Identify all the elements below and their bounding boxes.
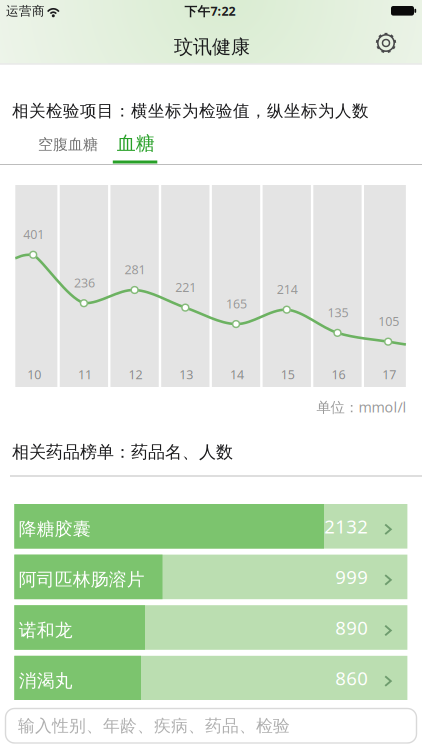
staticText: 236	[74, 274, 95, 291]
staticText: 相关药品榜单：药品名、人数	[12, 441, 233, 463]
staticText: 相关检验项目：横坐标为检验值，纵坐标为人数	[12, 101, 369, 121]
staticText: 玟讯健康	[174, 35, 250, 59]
staticText: 下午7:22	[184, 2, 235, 19]
staticText: 15	[281, 366, 295, 383]
staticText: 单位：mmol/l	[316, 397, 406, 417]
staticText: 阿司匹林肠溶片	[19, 568, 145, 591]
staticText: 17	[382, 366, 396, 383]
staticText: 221	[175, 279, 196, 296]
button[interactable]: Settings	[370, 27, 402, 59]
staticText: 运营商	[6, 3, 45, 19]
staticText: 860	[335, 665, 368, 691]
staticText: 12	[129, 366, 143, 383]
button[interactable]: 消渴丸	[14, 656, 407, 700]
staticText: 16	[331, 366, 345, 383]
staticText: 999	[335, 564, 368, 589]
staticText: 135	[327, 304, 348, 321]
staticText: 105	[378, 313, 399, 330]
staticText: 2132	[324, 514, 368, 539]
staticText: 14	[230, 366, 244, 383]
staticText: 401	[23, 226, 44, 243]
button[interactable]: 阿司匹林肠溶片	[14, 555, 407, 599]
staticText: 血糖	[117, 131, 155, 155]
staticText: 890	[335, 615, 368, 640]
button[interactable]: 诺和龙	[14, 605, 407, 650]
staticText: 11	[78, 366, 92, 383]
staticText: 10	[27, 366, 41, 383]
staticText: 输入性别、年龄、疾病、药品、检验	[18, 715, 290, 737]
staticText: 214	[277, 281, 298, 298]
button[interactable]: 输入性别、年龄、疾病、药品、检验	[5, 708, 416, 743]
staticText: 消渴丸	[19, 670, 73, 692]
staticText: 281	[125, 261, 146, 278]
button[interactable]: 降糖胶囊	[14, 504, 407, 549]
button[interactable]: 血糖	[0, 0, 60, 38]
staticText: 13	[179, 366, 193, 383]
button[interactable]: 空腹血糖	[0, 0, 90, 30]
staticText: 降糖胶囊	[19, 518, 91, 540]
staticText: 空腹血糖	[38, 135, 98, 154]
staticText: 165	[226, 295, 247, 312]
staticText: 诺和龙	[19, 619, 73, 641]
